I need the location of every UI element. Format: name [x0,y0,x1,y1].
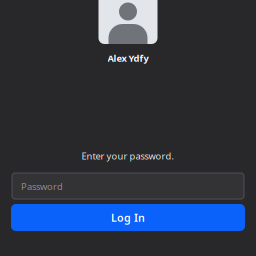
staticText: Log In [111,210,145,225]
button[interactable]: Log In [11,204,245,231]
staticText: Alex Ydfy [107,52,148,64]
button[interactable]: Password [0,173,256,199]
staticText: Enter your password. [81,150,174,162]
staticText: Password [21,180,63,193]
